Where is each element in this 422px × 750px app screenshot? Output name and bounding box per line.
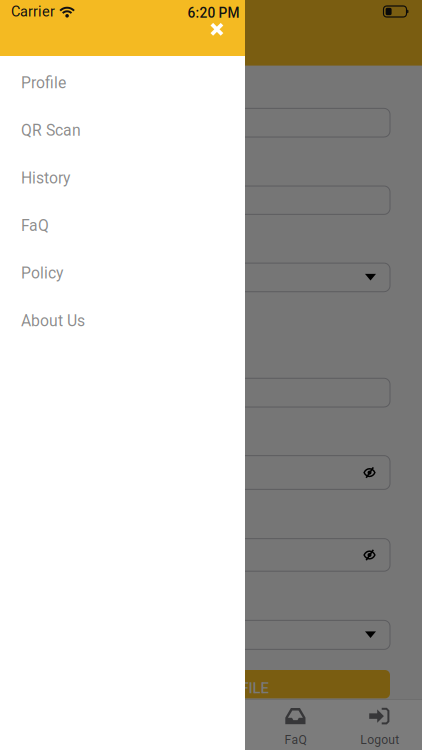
button[interactable]: Text field xyxy=(32,456,390,489)
button[interactable]: Profile xyxy=(0,59,245,107)
staticText: QR Scan xyxy=(21,121,81,140)
button[interactable]: Text field xyxy=(32,539,390,571)
button[interactable]: Logout xyxy=(338,699,422,750)
staticText: Logout xyxy=(360,733,399,747)
staticText: About Us xyxy=(21,312,85,330)
button[interactable]: QR Scan xyxy=(0,107,245,154)
button[interactable]: FaQ xyxy=(253,699,338,750)
staticText: 6:20 PM xyxy=(187,5,239,21)
staticText: History xyxy=(21,169,70,187)
staticText: FaQ xyxy=(21,216,49,235)
staticText: UPDATE PROFILE xyxy=(153,679,268,697)
button[interactable]: Policy xyxy=(0,249,245,297)
button[interactable]: About Us xyxy=(0,297,245,345)
button[interactable]: Close menu xyxy=(201,15,233,43)
button[interactable]: UPDATE PROFILE xyxy=(32,670,390,698)
button[interactable]: FaQ xyxy=(0,202,245,249)
staticText: Policy xyxy=(21,264,63,282)
button[interactable]: Text field xyxy=(32,108,390,137)
button[interactable]: Text field xyxy=(32,263,390,292)
staticText: FaQ xyxy=(284,733,306,747)
staticText: Profile xyxy=(21,74,66,92)
staticText: Carrier xyxy=(11,3,55,20)
button[interactable]: Text field xyxy=(32,620,390,649)
button[interactable]: History xyxy=(169,699,253,750)
button[interactable]: Text field xyxy=(32,186,390,214)
button[interactable]: History xyxy=(0,154,245,202)
button[interactable]: Text field xyxy=(32,378,390,407)
